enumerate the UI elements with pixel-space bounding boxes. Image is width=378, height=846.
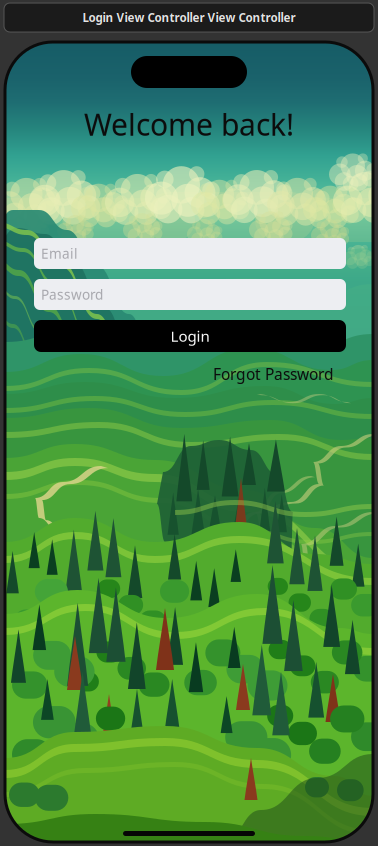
staticText: Login View Controller View Controller xyxy=(82,10,295,25)
staticText: Login xyxy=(170,326,209,346)
button[interactable]: Forgot Password xyxy=(34,364,334,384)
staticText: Welcome back! xyxy=(84,104,294,144)
staticText: Password xyxy=(41,285,103,304)
staticText: Email xyxy=(41,244,78,263)
button[interactable]: Login xyxy=(34,320,346,352)
staticText: Forgot Password xyxy=(213,363,334,385)
